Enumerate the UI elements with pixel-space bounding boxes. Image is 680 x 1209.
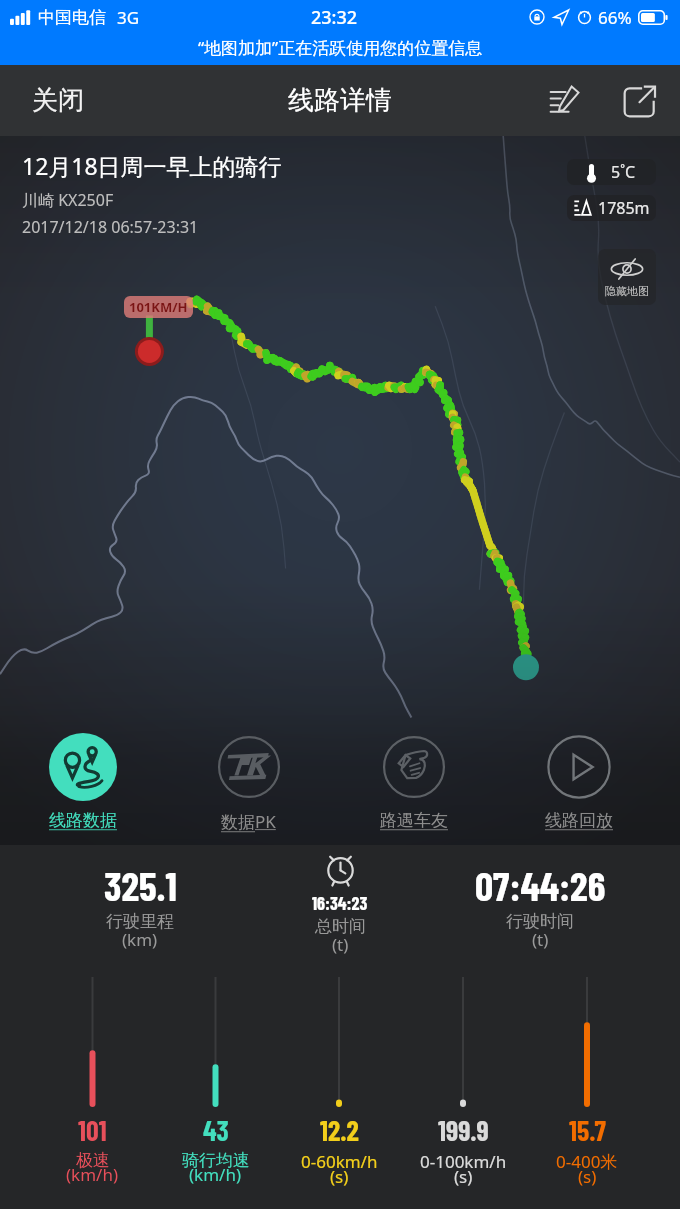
- staticText: (s): [578, 1165, 597, 1188]
- staticText: 关闭: [32, 84, 84, 117]
- staticText: 川崎 KX250F: [22, 189, 114, 211]
- staticText: 15.7: [569, 1113, 606, 1147]
- button[interactable]: 5˚C: [567, 159, 656, 185]
- button[interactable]: Edit: [540, 76, 590, 126]
- staticText: 总时间: [315, 916, 366, 937]
- staticText: 路遇车友: [380, 810, 448, 831]
- staticText: (t): [332, 933, 349, 956]
- staticText: (km/h): [66, 1163, 119, 1186]
- staticText: (km): [122, 928, 158, 951]
- button[interactable]: 1785m: [567, 195, 656, 221]
- staticText: 43: [203, 1113, 229, 1147]
- staticText: 199.9: [438, 1113, 489, 1147]
- button[interactable]: 路遇车友: [331, 731, 496, 833]
- staticText: 线路详情: [288, 84, 392, 117]
- staticText: 12月18日周一早上的骑行: [22, 150, 282, 181]
- staticText: 101: [78, 1113, 107, 1147]
- staticText: 数据PK: [221, 810, 276, 833]
- staticText: 5˚C: [611, 161, 636, 183]
- staticText: (t): [532, 928, 549, 951]
- staticText: 16:34:23: [312, 892, 368, 914]
- staticText: 极速: [76, 1150, 110, 1171]
- button[interactable]: 线路数据: [0, 731, 166, 833]
- button[interactable]: 隐藏地图: [598, 249, 656, 305]
- staticText: 0-100km/h: [420, 1150, 507, 1173]
- button[interactable]: 关闭: [22, 76, 94, 125]
- staticText: 隐藏地图: [605, 284, 649, 298]
- button[interactable]: 数据PK: [166, 731, 331, 835]
- staticText: 3G: [117, 6, 140, 29]
- button[interactable]: 线路回放: [496, 731, 661, 833]
- staticText: “地图加加”正在活跃使用您的位置信息: [198, 36, 483, 59]
- staticText: 中国电信: [38, 7, 106, 28]
- staticText: (s): [454, 1165, 473, 1188]
- staticText: 12.2: [320, 1113, 359, 1147]
- staticText: (km/h): [189, 1163, 242, 1186]
- staticText: 0-60km/h: [301, 1150, 378, 1173]
- staticText: 101KM/H: [129, 298, 188, 316]
- staticText: 23:32: [311, 5, 358, 30]
- staticText: 1785m: [598, 197, 650, 219]
- staticText: 66%: [598, 6, 632, 29]
- staticText: 行驶时间: [506, 911, 574, 932]
- staticText: 骑行均速: [182, 1150, 250, 1171]
- staticText: 325.1: [104, 861, 177, 909]
- staticText: 2017/12/18 06:57-23:31: [22, 216, 199, 238]
- staticText: 0-400米: [556, 1150, 618, 1173]
- staticText: 07:44:26: [475, 861, 606, 909]
- staticText: 行驶里程: [106, 911, 174, 932]
- staticText: (s): [330, 1165, 349, 1188]
- button[interactable]: Share: [614, 76, 664, 126]
- staticText: 线路回放: [545, 810, 613, 831]
- staticText: 线路数据: [49, 810, 117, 831]
